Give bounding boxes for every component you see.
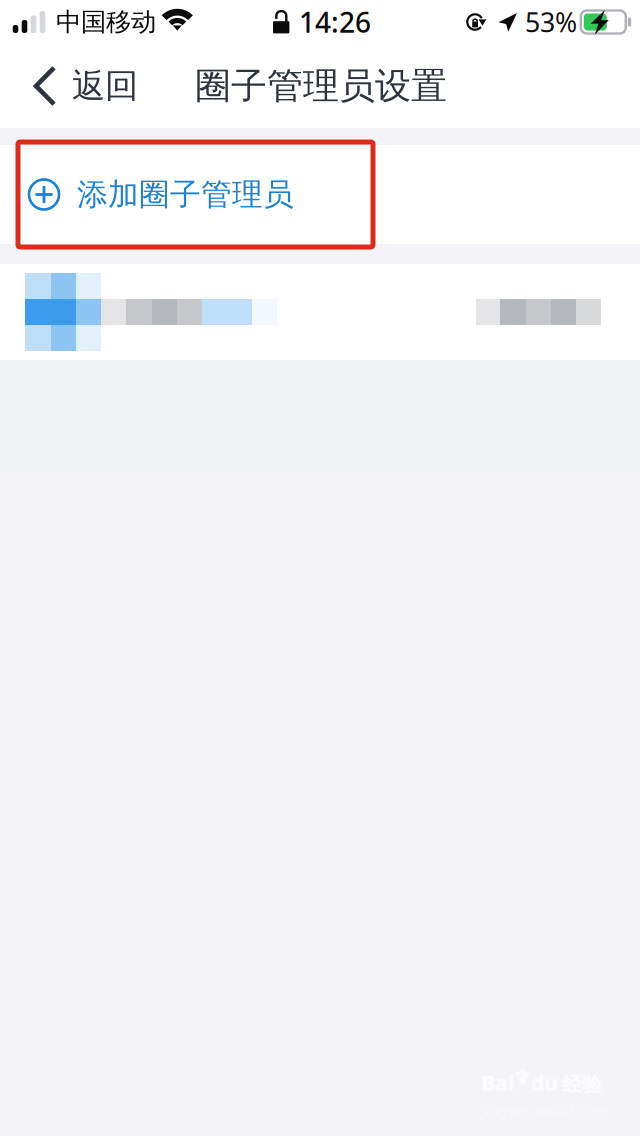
- staticText: 返回: [72, 65, 138, 106]
- button[interactable]: 返回: [0, 44, 156, 128]
- button[interactable]: 添加圈子管理员: [0, 145, 640, 244]
- button[interactable]: [0, 264, 640, 360]
- staticText: 53%: [525, 4, 577, 40]
- staticText: 添加圈子管理员: [77, 176, 294, 213]
- staticText: 圈子管理员设置: [195, 64, 447, 108]
- staticText: 中国移动: [56, 6, 156, 37]
- staticText: 14:26: [299, 3, 371, 41]
